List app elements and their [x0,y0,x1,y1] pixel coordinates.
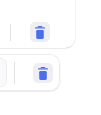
button[interactable]: Delete [33,63,53,83]
button[interactable]: Delete [30,22,50,42]
